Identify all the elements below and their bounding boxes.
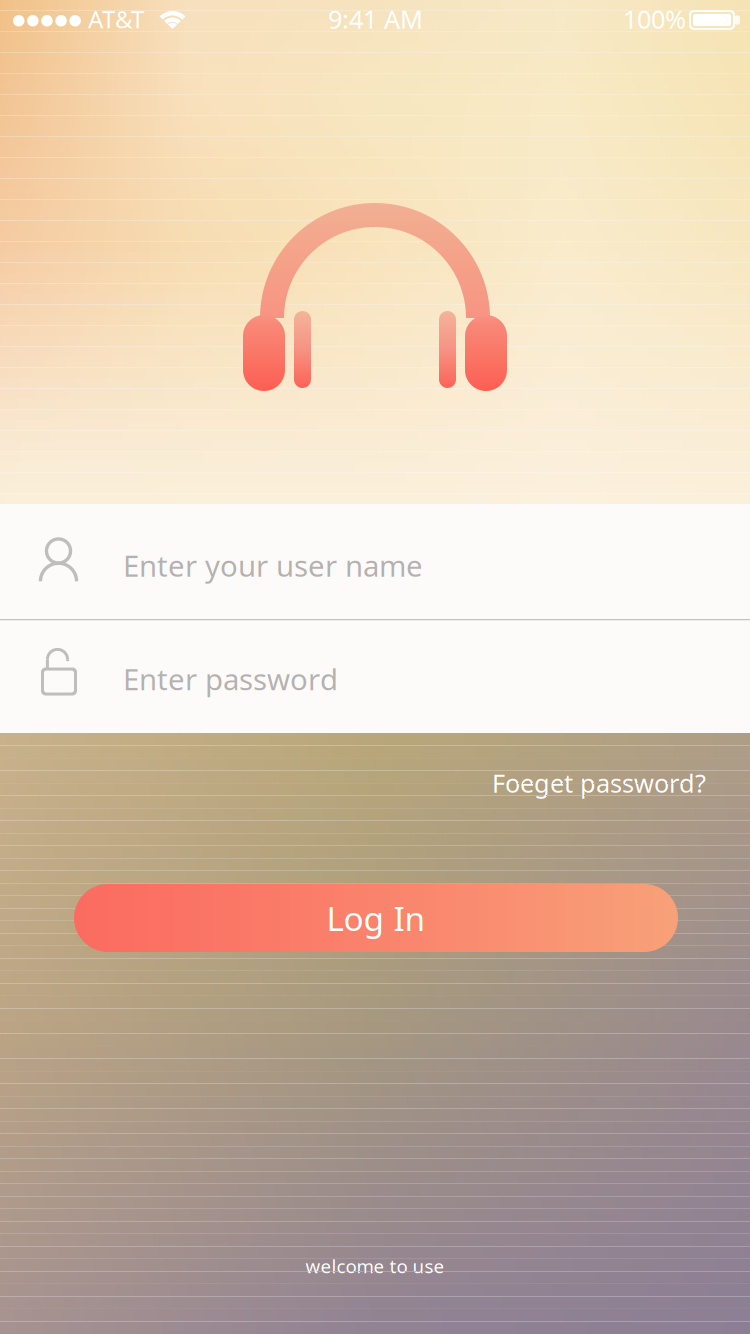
staticText: Foeget password? [492,766,706,800]
staticText: 9:41 AM [328,2,423,36]
button[interactable]: Enter your user name [0,504,750,619]
staticText: AT&T [88,3,144,35]
staticText: Log In [326,896,425,940]
staticText: Enter your user name [123,546,423,585]
staticText: Enter password [123,659,338,698]
staticText: welcome to use [305,1254,444,1278]
button[interactable]: Foeget password? [484,761,714,805]
button[interactable]: Log In [74,884,678,952]
staticText: 100% [623,2,686,36]
button[interactable]: Enter password [0,620,750,733]
